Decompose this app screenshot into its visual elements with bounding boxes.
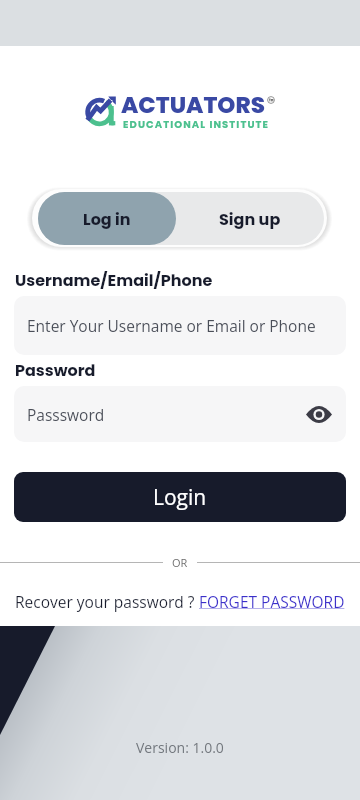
staticText: Sign up (219, 208, 281, 230)
staticText: ACTUATORS (121, 89, 265, 121)
staticText: Username/Email/Phone (15, 269, 213, 291)
button[interactable]: Enter Your Username or Email or Phone (14, 296, 346, 355)
button[interactable]: Show password (302, 397, 336, 431)
button[interactable]: Sign up (176, 192, 324, 245)
staticText: OR (172, 555, 188, 570)
staticText: Version: 1.0.0 (136, 738, 224, 757)
staticText: Enter Your Username or Email or Phone (27, 315, 316, 336)
staticText: Passsword (27, 404, 105, 425)
button[interactable]: FORGET PASSWORD (199, 591, 345, 612)
staticText: EDUCATIONAL INSTITUTE (123, 117, 270, 131)
button[interactable]: Login (14, 472, 346, 522)
button[interactable]: Passsword (14, 386, 346, 442)
staticText: Login (153, 483, 207, 512)
button[interactable]: Log in (38, 192, 176, 245)
staticText: Recover your password ? (15, 591, 199, 612)
staticText: Log in (83, 208, 131, 230)
staticText: Password (15, 359, 96, 381)
